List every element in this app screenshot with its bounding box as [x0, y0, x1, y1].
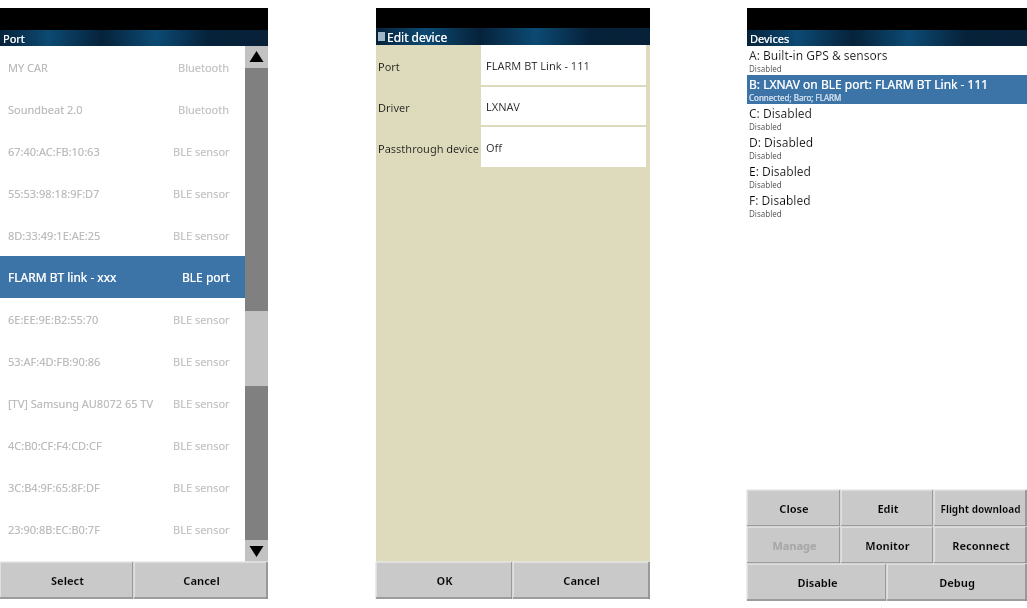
button[interactable]: Edit	[841, 490, 934, 527]
button[interactable]: OK	[376, 562, 513, 599]
staticText: Select	[51, 573, 84, 588]
button[interactable]: Scroll down	[245, 540, 268, 562]
button[interactable]: Cancel	[513, 562, 650, 599]
staticText: Disabled	[749, 150, 782, 161]
staticText: Disabled	[749, 179, 782, 190]
button[interactable]: FLARM BT link - xxx	[8, 256, 230, 298]
staticText: E	[379, 144, 385, 158]
button[interactable]: 8D:33:49:1E:AE:25	[8, 214, 230, 256]
staticText: Manage	[772, 538, 817, 553]
staticText: BLE sensor	[173, 480, 230, 495]
staticText: FLARM BT link - xxx	[8, 269, 117, 285]
staticText: Soundbeat 2.0	[8, 102, 83, 117]
staticText: Bluetooth	[178, 60, 230, 75]
button[interactable]: 4C:B0:CF:F4:CD:CF	[8, 424, 230, 466]
button[interactable]: Port	[376, 45, 650, 87]
button[interactable]: Manage	[747, 527, 841, 564]
staticText: 23:90:8B:EC:B0:7F	[8, 522, 100, 537]
staticText: Bluetooth	[178, 102, 230, 117]
button[interactable]: Passthrough device	[376, 127, 650, 169]
staticText: 4C:B0:CF:F4:CD:CF	[8, 438, 102, 453]
staticText: Edit	[877, 501, 899, 516]
button[interactable]: Close	[747, 490, 841, 527]
button[interactable]: B: LXNAV on BLE port: FLARM BT Link - 11…	[747, 75, 1027, 104]
button[interactable]: Cancel	[134, 562, 268, 599]
staticText: LXNAV	[486, 99, 520, 114]
staticText: Driver	[378, 100, 410, 115]
staticText: 6E:EE:9E:B2:55:70	[8, 312, 99, 327]
button[interactable]: 3C:B4:9F:65:8F:DF	[8, 466, 230, 508]
button[interactable]: E: Disabled	[747, 162, 1027, 191]
button[interactable]: Driver	[376, 87, 650, 127]
staticText: Passthrough device	[378, 141, 479, 156]
staticText: 55:53:98:18:9F:D7	[8, 186, 100, 201]
staticText: BLE sensor	[173, 438, 230, 453]
staticText: BLE sensor	[173, 186, 230, 201]
staticText: BLE sensor	[173, 312, 230, 327]
staticText: Cancel	[183, 573, 220, 588]
button[interactable]: MY CAR	[8, 46, 230, 88]
staticText: Port	[378, 59, 400, 74]
button[interactable]: F: Disabled	[747, 191, 1027, 220]
staticText: B: LXNAV on BLE port: FLARM BT Link - 11…	[749, 76, 989, 92]
staticText: Disabled	[749, 121, 782, 132]
staticText: BLE sensor	[173, 228, 230, 243]
staticText: Debug	[939, 575, 975, 590]
button[interactable]: [TV] Samsung AU8072 65 TV	[8, 382, 230, 424]
button[interactable]: Scroll up	[245, 46, 268, 68]
staticText: 8D:33:49:1E:AE:25	[8, 228, 101, 243]
staticText: Cancel	[563, 573, 600, 588]
staticText: FLARM BT Link - 111	[486, 58, 590, 73]
staticText: Devices	[379, 29, 419, 44]
staticText: Devices	[750, 31, 790, 46]
staticText: D: Disabled	[749, 134, 814, 150]
staticText: Connected; Baro; FLARM	[749, 92, 842, 103]
staticText: Disabled	[749, 63, 782, 74]
button[interactable]: A: Built-in GPS & sensors	[747, 46, 1027, 75]
staticText: Disabled	[749, 208, 782, 219]
staticText: Flight download	[940, 502, 1021, 516]
button[interactable]: 55:53:98:18:9F:D7	[8, 172, 230, 214]
staticText: C: Disabled	[749, 105, 812, 121]
staticText: D	[379, 59, 385, 69]
button[interactable]: Flight download	[934, 490, 1027, 527]
button[interactable]: Monitor	[841, 527, 934, 564]
staticText: Off	[486, 140, 503, 155]
staticText: BLE sensor	[173, 144, 230, 159]
button[interactable]: 53:AF:4D:FB:90:86	[8, 340, 230, 382]
button[interactable]: Reconnect	[934, 527, 1027, 564]
staticText: Port	[3, 31, 25, 46]
button[interactable]: C: Disabled	[747, 104, 1027, 133]
button[interactable]: Soundbeat 2.0	[8, 88, 230, 130]
button[interactable]: Select	[0, 562, 134, 599]
button[interactable]: Disable	[747, 564, 887, 601]
button[interactable]: 6E:EE:9E:B2:55:70	[8, 298, 230, 340]
staticText: Close	[779, 501, 809, 516]
staticText: F: Disabled	[749, 192, 811, 208]
staticText: D	[379, 109, 385, 119]
staticText: [TV] Samsung AU8072 65 TV	[8, 396, 154, 411]
staticText: Reconnect	[952, 538, 1010, 553]
staticText: Monitor	[865, 538, 910, 553]
staticText: B	[379, 69, 386, 83]
staticText: A: Built-in GPS & sensors	[749, 47, 888, 63]
button[interactable]: 23:90:8B:EC:B0:7F	[8, 508, 230, 550]
button[interactable]: Debug	[887, 564, 1027, 601]
staticText: E: Disabled	[749, 163, 811, 179]
button[interactable]: 67:40:AC:FB:10:63	[8, 130, 230, 172]
staticText: 67:40:AC:FB:10:63	[8, 144, 100, 159]
staticText: MY CAR	[8, 60, 48, 75]
button[interactable]: D: Disabled	[747, 133, 1027, 162]
staticText: Edit device	[387, 29, 448, 45]
staticText: BLE sensor	[173, 522, 230, 537]
staticText: C	[379, 94, 386, 108]
staticText: 3C:B4:9F:65:8F:DF	[8, 480, 100, 495]
staticText: OK	[436, 573, 453, 588]
